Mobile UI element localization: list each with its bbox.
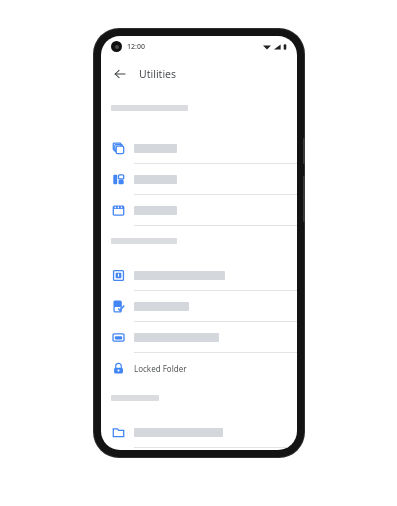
button[interactable]: List item xyxy=(101,195,297,225)
button[interactable]: List item xyxy=(101,260,297,290)
button[interactable]: List item xyxy=(101,322,297,352)
button[interactable]: List item xyxy=(101,417,297,447)
staticText: Utilities xyxy=(139,67,177,81)
button[interactable]: List item xyxy=(101,164,297,194)
button[interactable]: Back xyxy=(109,63,131,85)
staticText: Locked Folder xyxy=(134,363,187,374)
button[interactable]: Locked Folder xyxy=(101,353,297,383)
button[interactable]: List item xyxy=(101,291,297,321)
staticText: 12:00 xyxy=(127,42,145,52)
button[interactable]: List item xyxy=(101,133,297,163)
